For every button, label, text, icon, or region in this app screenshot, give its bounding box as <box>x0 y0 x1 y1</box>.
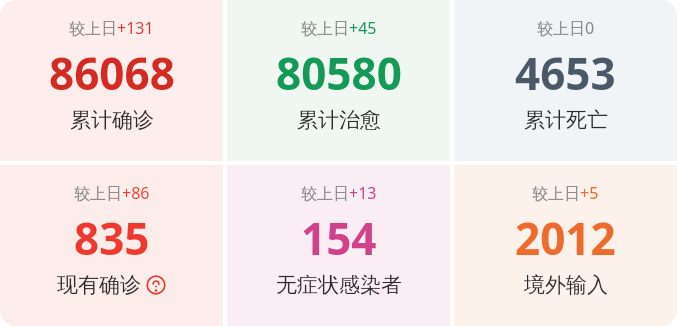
staticText: 较上日+45 <box>301 17 377 39</box>
staticText: 累计治愈 <box>297 107 381 133</box>
staticText: 较上日+86 <box>74 182 150 204</box>
staticText: 境外输入 <box>524 272 608 298</box>
staticText: 4653 <box>515 43 616 103</box>
staticText: 较上日+131 <box>69 17 154 39</box>
staticText: 较上日+13 <box>301 182 377 204</box>
staticText: 现有确诊 <box>57 272 141 298</box>
button[interactable]: 较上日+13 <box>227 165 450 326</box>
staticText: 86068 <box>49 43 175 103</box>
staticText: 2012 <box>515 208 616 268</box>
button[interactable]: 较上日+5 <box>454 165 677 326</box>
staticText: 无症状感染者 <box>276 272 402 298</box>
staticText: 较上日+5 <box>532 182 599 204</box>
staticText: 累计死亡 <box>524 107 608 133</box>
staticText: 835 <box>74 208 150 268</box>
button[interactable]: 较上日+131 <box>0 0 223 161</box>
staticText: 累计确诊 <box>70 107 154 133</box>
button[interactable]: 较上日0 <box>454 0 677 161</box>
button[interactable]: 较上日+86 <box>0 165 223 326</box>
staticText: 154 <box>301 208 377 268</box>
staticText: 较上日0 <box>537 17 595 39</box>
button[interactable]: 较上日+45 <box>227 0 450 161</box>
staticText: 80580 <box>276 43 402 103</box>
other: Help <box>146 275 166 295</box>
